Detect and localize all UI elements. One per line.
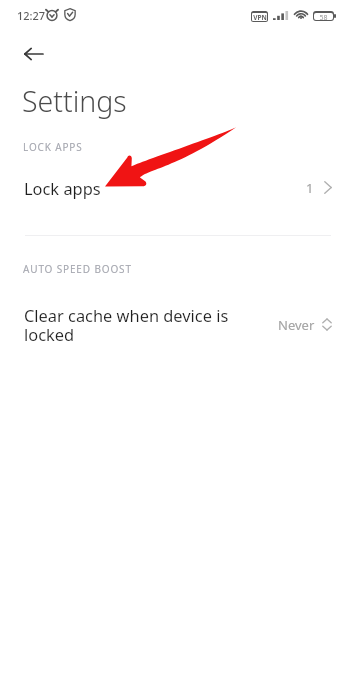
- staticText: 1: [306, 179, 314, 197]
- staticText: Clear cache when device is locked: [24, 304, 236, 345]
- button[interactable]: Clear cache when device is locked: [0, 296, 356, 353]
- staticText: VPN: [253, 13, 267, 21]
- button[interactable]: Lock apps: [0, 167, 356, 208]
- staticText: LOCK APPS: [23, 140, 83, 154]
- staticText: 12:27: [17, 8, 46, 23]
- staticText: Settings: [22, 82, 127, 121]
- staticText: 58: [319, 13, 328, 20]
- button[interactable]: Back: [13, 33, 54, 74]
- staticText: Lock apps: [24, 177, 101, 199]
- staticText: Never: [278, 316, 315, 334]
- staticText: AUTO SPEED BOOST: [23, 262, 132, 276]
